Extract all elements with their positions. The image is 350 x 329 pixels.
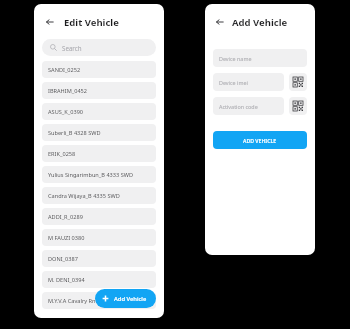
staticText: IBRAHIM_0452 (48, 87, 87, 95)
button[interactable]: M.Y.V.A Cavalry RnD Victory (42, 292, 156, 309)
button[interactable]: Activation code (213, 97, 284, 115)
staticText: Device name (219, 55, 252, 62)
button[interactable]: Suberli_B 4328 SWD (42, 124, 156, 141)
staticText: Edit Vehicle (64, 16, 119, 29)
staticText: ADDI_R_0289 (48, 213, 83, 221)
staticText: M FAUZI 0380 (48, 234, 85, 242)
button[interactable]: M. DENI_0394 (42, 271, 156, 288)
button[interactable]: Scan QR code (289, 73, 307, 91)
staticText: Search (62, 44, 82, 52)
staticText: ASUS_K_0390 (48, 108, 84, 116)
button[interactable]: ADDI_R_0289 (42, 208, 156, 225)
button[interactable]: Back (43, 15, 57, 29)
button[interactable]: Back (213, 15, 227, 29)
button[interactable]: Search (42, 39, 156, 56)
staticText: SANDI_0252 (48, 66, 81, 74)
staticText: Activation code (219, 103, 258, 110)
staticText: M. DENI_0394 (48, 276, 85, 284)
button[interactable]: Add Vehicle (95, 289, 156, 308)
staticText: ADD VEHICLE (243, 137, 277, 144)
staticText: Add Vehicle (232, 16, 288, 29)
button[interactable]: Scan QR code (289, 97, 307, 115)
button[interactable]: Yulius Singarimbun_B 4333 SWD (42, 166, 156, 183)
button[interactable]: ADD VEHICLE (213, 131, 307, 149)
button[interactable]: Device name (213, 49, 307, 67)
staticText: ERIK_0258 (48, 150, 76, 158)
staticText: Candra Wijaya_B 4335 SWD (48, 192, 120, 200)
button[interactable]: Candra Wijaya_B 4335 SWD (42, 187, 156, 204)
staticText: Yulius Singarimbun_B 4333 SWD (48, 171, 134, 179)
button[interactable]: SANDI_0252 (42, 61, 156, 78)
button[interactable]: ASUS_K_0390 (42, 103, 156, 120)
staticText: M.Y.V.A Cavalry RnD Victory (48, 297, 120, 305)
button[interactable]: ERIK_0258 (42, 145, 156, 162)
button[interactable]: M FAUZI 0380 (42, 229, 156, 246)
button[interactable]: Device imei (213, 73, 284, 91)
staticText: Suberli_B 4328 SWD (48, 129, 101, 137)
staticText: DONI_0387 (48, 255, 78, 263)
button[interactable]: IBRAHIM_0452 (42, 82, 156, 99)
staticText: Device imei (219, 79, 248, 86)
button[interactable]: DONI_0387 (42, 250, 156, 267)
staticText: Add Vehicle (114, 295, 147, 303)
